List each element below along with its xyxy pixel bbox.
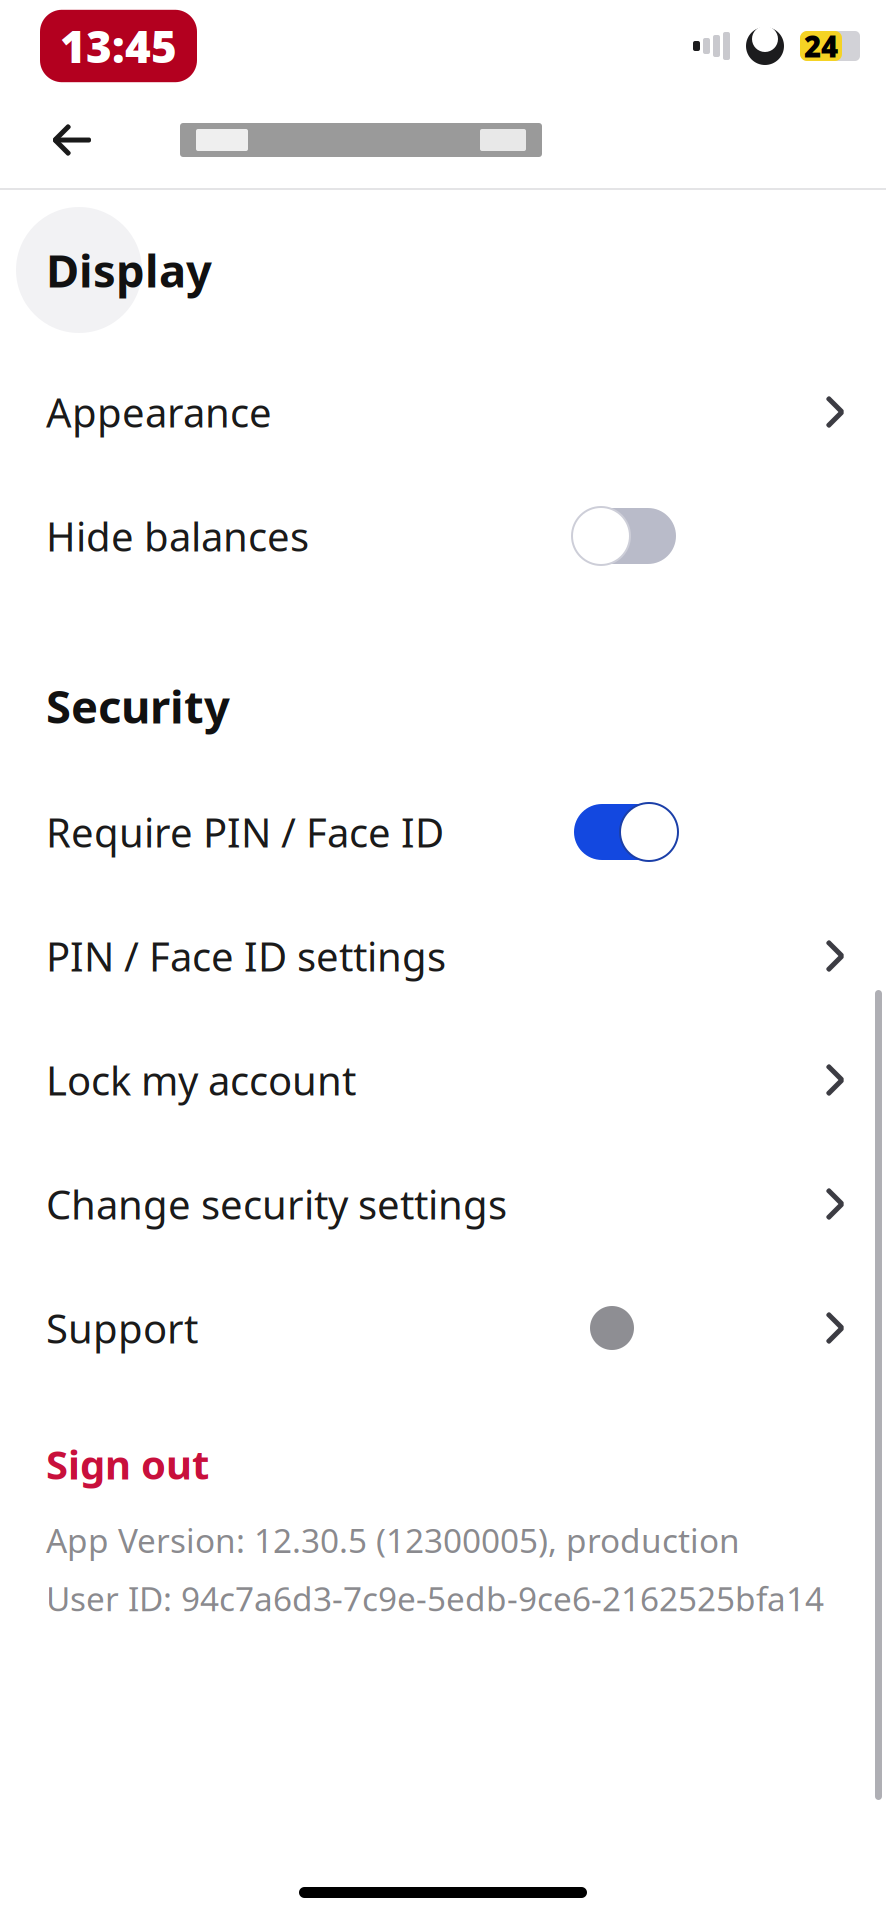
staticText: Support [46,1301,198,1354]
button[interactable]: Back [34,102,110,178]
staticText: Lock my account [46,1053,356,1106]
button[interactable]: Support [0,1266,886,1390]
staticText: Require PIN / Face ID [46,805,444,858]
staticText: Appearance [46,385,272,438]
staticText: 24 [804,26,838,65]
staticText: Sign out [46,1437,209,1490]
staticText: Hide balances [46,509,309,562]
staticText: 13:45 [60,17,177,75]
button[interactable]: PIN / Face ID settings [0,894,886,1018]
button[interactable]: Sign out [0,1418,886,1510]
button[interactable]: Hide balances [0,474,886,598]
button[interactable]: Change security settings [0,1142,886,1266]
staticText: Display [46,240,212,300]
staticText: Security [46,676,230,736]
staticText: App Version: 12.30.5 (12300005), product… [46,1518,740,1562]
staticText: Change security settings [46,1177,507,1230]
staticText: User ID: 94c7a6d3-7c9e-5edb-9ce6-2162525… [46,1576,824,1621]
staticText: PIN / Face ID settings [46,929,446,982]
button[interactable]: Require PIN / Face ID [0,770,886,894]
button[interactable]: Appearance [0,350,886,474]
button[interactable]: Lock my account [0,1018,886,1142]
